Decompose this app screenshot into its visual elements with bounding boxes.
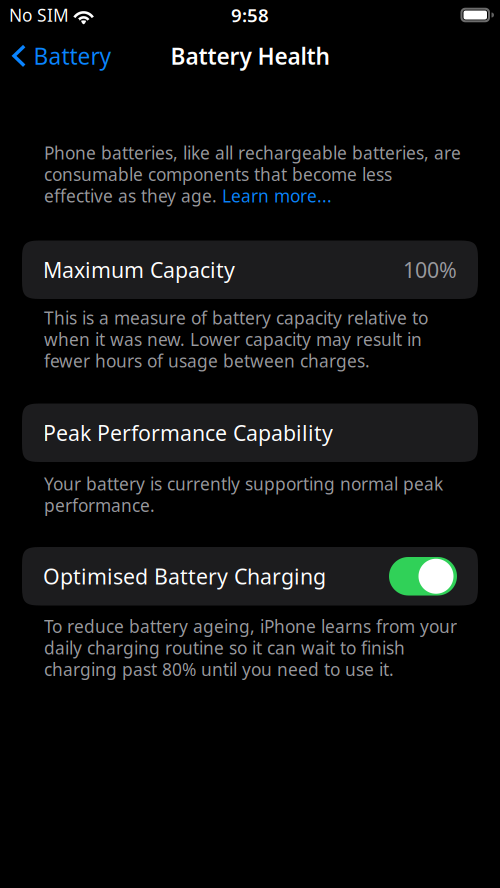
staticText: To reduce battery ageing, iPhone learns … [44, 615, 457, 638]
button[interactable]: Learn more... [222, 184, 332, 207]
staticText: charging past 80% until you need to use … [44, 658, 394, 681]
button[interactable]: Maximum Capacity [22, 240, 478, 299]
staticText: 9:58 [231, 3, 269, 27]
staticText: when it was new. Lower capacity may resu… [44, 328, 422, 351]
staticText: consumable components that become less [44, 163, 392, 186]
staticText: Battery Health [170, 41, 329, 71]
staticText: 100% [403, 256, 457, 284]
button[interactable]: Battery [0, 39, 119, 73]
staticText: effective as they age. [44, 184, 222, 207]
staticText: Your battery is currently supporting nor… [44, 472, 443, 495]
staticText: Optimised Battery Charging [43, 562, 326, 590]
staticText: fewer hours of usage between charges. [44, 349, 370, 372]
staticText: Peak Performance Capability [43, 419, 333, 447]
staticText: No SIM [9, 3, 69, 26]
staticText: This is a measure of battery capacity re… [44, 306, 428, 329]
staticText: Learn more... [222, 184, 332, 207]
button[interactable]: Peak Performance Capability [22, 403, 478, 462]
staticText: Battery [33, 41, 111, 71]
staticText: performance. [44, 494, 155, 517]
staticText: Phone batteries, like all rechargeable b… [44, 141, 461, 164]
button[interactable]: Optimised Battery Charging [22, 547, 478, 605]
staticText: Maximum Capacity [43, 256, 235, 284]
staticText: daily charging routine so it can wait to… [44, 636, 405, 659]
